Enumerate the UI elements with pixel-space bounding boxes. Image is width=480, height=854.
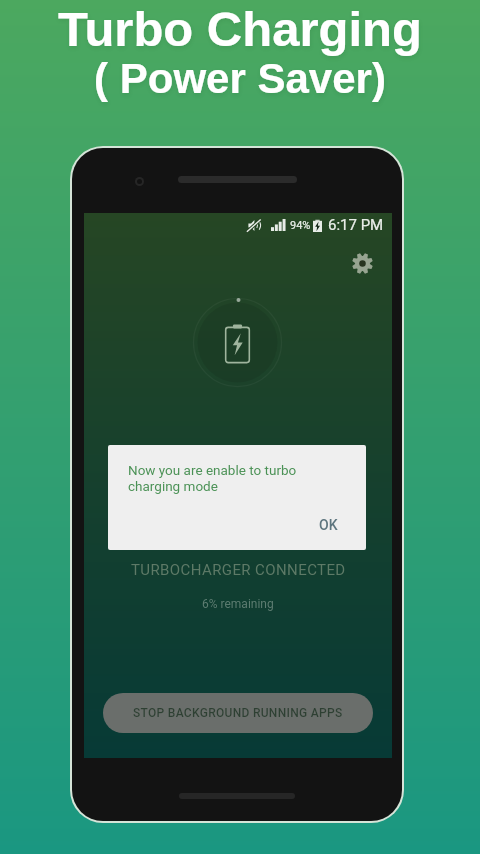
staticText: STOP BACKGROUND RUNNING APPS — [133, 706, 343, 720]
button[interactable]: OK — [309, 511, 348, 539]
staticText: Now you are enable to turbo charging mod… — [128, 462, 297, 495]
staticText: TURBOCHARGER CONNECTED — [131, 561, 346, 579]
button[interactable]: Settings — [346, 247, 378, 279]
staticText: 94% — [290, 219, 311, 232]
staticText: 6:17 PM — [328, 216, 384, 234]
staticText: 6% remaining — [202, 597, 274, 611]
button[interactable]: STOP BACKGROUND RUNNING APPS — [103, 693, 373, 733]
staticText: OK — [319, 517, 338, 533]
staticText: ( Power Saver) — [94, 55, 386, 102]
staticText: Turbo Charging — [58, 2, 422, 57]
